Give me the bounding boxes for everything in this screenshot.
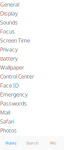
staticText: Passwords — [0, 100, 27, 107]
staticText: Emergency — [0, 91, 28, 98]
button[interactable]: Emergency — [0, 90, 64, 99]
staticText: General — [0, 1, 19, 8]
button[interactable]: General — [0, 0, 64, 9]
staticText: Battery — [0, 55, 18, 62]
staticText: Screen Time — [0, 37, 30, 44]
staticText: Search — [26, 140, 38, 146]
button[interactable]: Battery — [0, 54, 64, 63]
button[interactable]: Face ID — [0, 81, 64, 90]
button[interactable]: Home — [0, 140, 21, 146]
button[interactable]: Mail — [0, 108, 64, 117]
button[interactable]: Search — [21, 140, 43, 146]
staticText: Photos — [0, 127, 17, 134]
staticText: Focus — [0, 28, 15, 35]
staticText: Control Center — [0, 73, 34, 80]
button[interactable]: Sounds — [0, 18, 64, 27]
staticText: Me — [50, 140, 56, 146]
staticText: Mail — [0, 109, 10, 116]
staticText: Safari — [0, 118, 14, 125]
button[interactable]: Display — [0, 9, 64, 18]
staticText: Wallpaper — [0, 64, 24, 71]
button[interactable]: Passwords — [0, 99, 64, 108]
button[interactable]: Photos — [0, 126, 64, 135]
staticText: Sounds — [0, 19, 18, 26]
button[interactable]: Me — [43, 140, 64, 146]
staticText: Face ID — [0, 82, 19, 89]
button[interactable]: Privacy — [0, 45, 64, 54]
button[interactable]: Wallpaper — [0, 63, 64, 72]
staticText: Home — [5, 140, 16, 146]
button[interactable]: Focus — [0, 27, 64, 36]
button[interactable]: Screen Time — [0, 36, 64, 45]
button[interactable]: Control Center — [0, 72, 64, 81]
staticText: Privacy — [0, 46, 18, 53]
staticText: Display — [0, 10, 18, 17]
button[interactable]: Safari — [0, 117, 64, 126]
